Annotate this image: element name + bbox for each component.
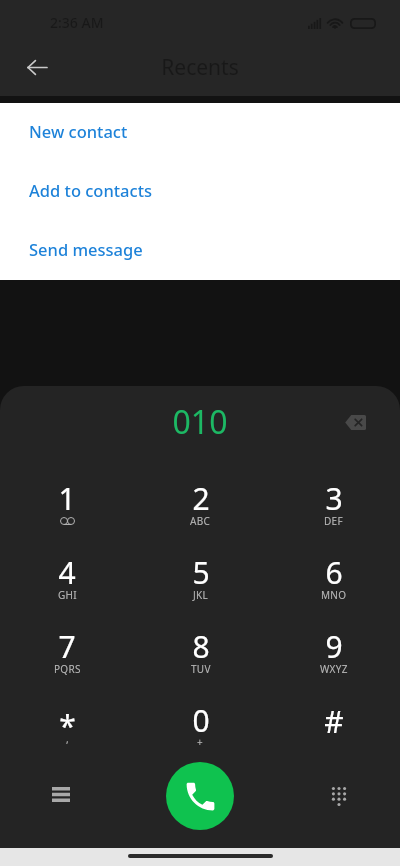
staticText: MNO — [321, 588, 347, 602]
staticText: 1 — [58, 478, 76, 519]
staticText: 7 — [58, 626, 76, 667]
button[interactable]: Dialpad — [317, 774, 361, 818]
button[interactable]: 2 — [134, 471, 267, 545]
staticText: JKL — [193, 588, 209, 602]
button[interactable]: 9 — [267, 619, 400, 693]
staticText: PQRS — [54, 662, 81, 676]
staticText: 0 — [192, 700, 210, 741]
staticText: 4 — [58, 552, 76, 593]
staticText: 8 — [192, 626, 210, 667]
staticText: 010 — [0, 400, 400, 444]
staticText: # — [324, 701, 344, 742]
staticText: TUV — [191, 662, 211, 676]
button[interactable]: 6 — [267, 545, 400, 619]
button[interactable]: * — [0, 693, 134, 767]
staticText: 6 — [325, 552, 343, 593]
button[interactable]: 0 — [134, 693, 267, 767]
button[interactable]: Send message — [0, 221, 400, 280]
staticText: Recents — [0, 53, 400, 82]
button[interactable]: 8 — [134, 619, 267, 693]
staticText: 9 — [325, 626, 343, 667]
button[interactable]: More options — [39, 774, 83, 818]
staticText: GHI — [58, 588, 77, 602]
staticText: 3 — [325, 478, 343, 519]
staticText: 5 — [192, 552, 210, 593]
staticText: Add to contacts — [29, 179, 152, 201]
button[interactable]: 4 — [0, 545, 134, 619]
button[interactable]: Call — [166, 762, 234, 830]
staticText: DEF — [324, 514, 343, 528]
button[interactable]: New contact — [0, 103, 400, 162]
staticText: 2:36 AM — [50, 13, 104, 32]
button[interactable]: 3 — [267, 471, 400, 545]
staticText: WXYZ — [320, 662, 348, 676]
button[interactable]: Delete — [335, 402, 375, 442]
button[interactable]: Back — [17, 47, 58, 88]
staticText: ABC — [190, 514, 211, 528]
button[interactable]: 5 — [134, 545, 267, 619]
button[interactable]: # — [267, 693, 400, 767]
staticText: New contact — [29, 120, 128, 142]
staticText: 2 — [192, 478, 210, 519]
staticText: , — [66, 732, 69, 746]
staticText: + — [197, 735, 204, 749]
staticText: Send message — [29, 238, 143, 260]
button[interactable]: 1 — [0, 471, 134, 545]
staticText: * — [59, 705, 76, 746]
button[interactable]: 7 — [0, 619, 134, 693]
button[interactable]: Add to contacts — [0, 162, 400, 221]
